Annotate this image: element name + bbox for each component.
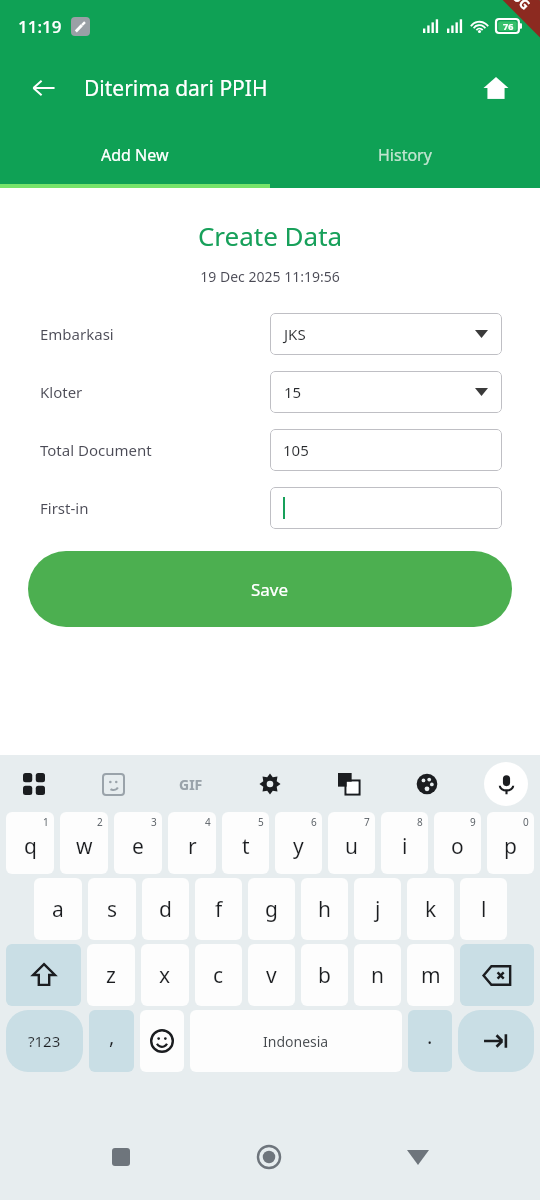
button[interactable]: z: [87, 944, 135, 1006]
staticText: o: [451, 832, 464, 861]
button[interactable]: Settings: [248, 762, 292, 806]
staticText: Kloter: [40, 382, 83, 402]
staticText: Create Data: [0, 218, 540, 253]
staticText: x: [159, 961, 171, 990]
button[interactable]: Home: [242, 1130, 296, 1184]
staticText: 7: [364, 815, 370, 829]
button[interactable]: n: [354, 944, 401, 1006]
button[interactable]: r: [168, 812, 216, 874]
button[interactable]: e: [114, 812, 162, 874]
staticText: e: [132, 832, 144, 861]
button[interactable]: Add New: [0, 126, 270, 184]
staticText: 8: [417, 815, 423, 829]
button[interactable]: f: [195, 878, 242, 940]
staticText: l: [481, 895, 487, 924]
staticText: u: [345, 832, 358, 861]
button[interactable]: u: [328, 812, 375, 874]
button[interactable]: d: [142, 878, 189, 940]
staticText: 2: [97, 815, 103, 829]
button[interactable]: Shift: [6, 944, 81, 1006]
staticText: 6: [311, 815, 317, 829]
button[interactable]: j: [354, 878, 401, 940]
staticText: Indonesia: [263, 1032, 329, 1051]
button[interactable]: Indonesia: [190, 1010, 402, 1072]
staticText: 19 Dec 2025 11:19:56: [0, 267, 540, 286]
staticText: 11:19: [18, 15, 62, 38]
staticText: p: [504, 832, 517, 861]
button[interactable]: History: [270, 126, 540, 184]
staticText: History: [378, 144, 432, 166]
staticText: h: [318, 895, 331, 924]
button[interactable]: ?123: [6, 1010, 83, 1072]
staticText: y: [293, 832, 304, 861]
button[interactable]: ,: [89, 1010, 134, 1072]
staticText: 0: [523, 815, 529, 829]
staticText: 4: [205, 815, 211, 829]
button[interactable]: q: [6, 812, 54, 874]
staticText: n: [371, 961, 384, 990]
staticText: GIF: [179, 775, 203, 794]
staticText: 9: [470, 815, 476, 829]
staticText: j: [375, 895, 381, 924]
button[interactable]: b: [301, 944, 348, 1006]
button[interactable]: s: [88, 878, 136, 940]
staticText: k: [425, 895, 437, 924]
button[interactable]: p: [487, 812, 534, 874]
staticText: Diterima dari PPIH: [84, 74, 268, 103]
button[interactable]: v: [248, 944, 295, 1006]
button[interactable]: Emoji: [140, 1010, 184, 1072]
staticText: r: [188, 832, 197, 861]
button[interactable]: 105: [270, 429, 502, 471]
button[interactable]: w: [60, 812, 108, 874]
button[interactable]: t: [222, 812, 269, 874]
button[interactable]: k: [407, 878, 454, 940]
button[interactable]: Back: [22, 66, 66, 110]
staticText: 5: [258, 815, 264, 829]
button[interactable]: o: [434, 812, 481, 874]
button[interactable]: .: [408, 1010, 452, 1072]
button[interactable]: Voice input: [484, 762, 528, 806]
button[interactable]: Recent apps: [94, 1130, 148, 1184]
button[interactable]: l: [460, 878, 507, 940]
staticText: Save: [251, 578, 289, 601]
button[interactable]: [270, 487, 502, 529]
button[interactable]: GIF: [169, 762, 213, 806]
button[interactable]: y: [275, 812, 322, 874]
button[interactable]: Home: [474, 66, 518, 110]
button[interactable]: c: [195, 944, 242, 1006]
staticText: q: [24, 832, 37, 861]
staticText: JKS: [284, 324, 306, 344]
staticText: v: [266, 961, 277, 990]
staticText: 1: [43, 815, 49, 829]
staticText: b: [318, 961, 331, 990]
button[interactable]: h: [301, 878, 348, 940]
staticText: d: [159, 895, 172, 924]
button[interactable]: Stickers: [91, 762, 135, 806]
button[interactable]: a: [34, 878, 82, 940]
button[interactable]: Translate: [327, 762, 371, 806]
button[interactable]: x: [141, 944, 189, 1006]
staticText: Embarkasi: [40, 324, 114, 344]
staticText: m: [421, 961, 441, 990]
staticText: a: [52, 895, 64, 924]
button[interactable]: Apps: [12, 762, 56, 806]
button[interactable]: Backspace: [460, 944, 534, 1006]
button[interactable]: i: [381, 812, 428, 874]
staticText: f: [215, 895, 223, 924]
button[interactable]: m: [407, 944, 454, 1006]
staticText: t: [242, 832, 250, 861]
staticText: z: [106, 961, 116, 990]
button[interactable]: Save: [28, 551, 512, 627]
staticText: DEBUG: [490, 0, 535, 14]
button[interactable]: JKS: [270, 313, 502, 355]
staticText: ,: [109, 1023, 115, 1050]
staticText: ?123: [28, 1031, 61, 1051]
button[interactable]: Theme: [405, 762, 449, 806]
staticText: w: [76, 832, 93, 861]
button[interactable]: Back: [391, 1130, 445, 1184]
button[interactable]: Next field: [458, 1010, 534, 1072]
staticText: 105: [283, 440, 309, 460]
button[interactable]: g: [248, 878, 295, 940]
button[interactable]: 15: [270, 371, 502, 413]
staticText: i: [402, 832, 408, 861]
